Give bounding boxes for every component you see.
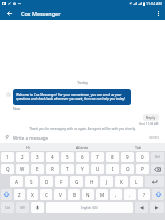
button[interactable]: Hi — [0, 143, 55, 151]
staticText: Welcome to Cox Messenger! For your conve… — [16, 93, 128, 101]
staticText: , — [115, 192, 117, 198]
button[interactable]: D — [40, 176, 53, 187]
button[interactable]: , — [110, 189, 122, 200]
button[interactable]: ▶ — [150, 202, 164, 213]
button[interactable]: !#© — [16, 202, 29, 213]
staticText: 3 — [36, 154, 39, 160]
staticText: 11:04 AM — [146, 1, 162, 6]
button[interactable]: English (US) — [46, 202, 133, 213]
button[interactable]: Atlanta — [55, 143, 110, 151]
staticText: Q — [6, 166, 10, 172]
button[interactable]: V — [54, 189, 66, 200]
button[interactable]: Attach file — [3, 133, 12, 142]
staticText: Cox Messenger — [21, 10, 61, 17]
button[interactable]: O — [121, 164, 134, 174]
staticText: G — [75, 179, 79, 185]
staticText: S — [30, 179, 33, 185]
button[interactable]: Q — [1, 164, 14, 174]
button[interactable]: Voice input — [31, 202, 44, 213]
button[interactable]: I — [106, 164, 119, 174]
button[interactable]: . — [124, 189, 136, 200]
button[interactable]: K — [115, 176, 128, 187]
button[interactable]: Del — [151, 152, 164, 162]
button[interactable]: SEND — [146, 133, 162, 142]
staticText: Sent 11:04 AM — [139, 122, 159, 126]
button[interactable]: Shift — [152, 189, 164, 200]
staticText: Write a message — [13, 135, 49, 141]
button[interactable]: Z — [14, 189, 25, 200]
staticText: 1 — [6, 154, 9, 160]
button[interactable]: More options — [151, 7, 165, 20]
staticText: H — [90, 179, 94, 185]
button[interactable]: 2 — [16, 152, 29, 162]
staticText: N — [86, 192, 90, 198]
button[interactable]: L — [130, 176, 143, 187]
staticText: A — [15, 179, 18, 185]
staticText: English (US) — [81, 206, 98, 210]
staticText: F — [60, 179, 63, 185]
button[interactable]: Shift — [1, 189, 12, 200]
button[interactable]: 6 — [76, 152, 89, 162]
button[interactable]: 1 — [1, 152, 14, 162]
staticText: Now — [13, 106, 21, 111]
button[interactable]: Reply — [143, 114, 159, 121]
button[interactable]: A — [10, 176, 23, 187]
button[interactable]: 9 — [121, 152, 134, 162]
staticText: ▶ — [155, 205, 159, 210]
button[interactable]: 5 — [61, 152, 74, 162]
button[interactable]: N — [82, 189, 94, 200]
button[interactable]: 7 — [91, 152, 104, 162]
staticText: O — [126, 166, 130, 172]
button[interactable]: B — [68, 189, 80, 200]
staticText: 6 — [81, 154, 84, 160]
button[interactable]: 0 — [136, 152, 149, 162]
button[interactable]: Ctrl — [1, 202, 14, 213]
button[interactable]: Back — [0, 7, 19, 20]
staticText: 0 — [141, 154, 144, 160]
staticText: Hi — [26, 145, 30, 150]
button[interactable]: ◀ — [135, 202, 148, 213]
button[interactable]: G — [70, 176, 83, 187]
button[interactable]: F — [55, 176, 68, 187]
button[interactable]: Backspace — [151, 164, 164, 174]
button[interactable]: P — [136, 164, 149, 174]
staticText: M — [100, 192, 105, 198]
staticText: L — [135, 179, 138, 185]
button[interactable]: W — [16, 164, 29, 174]
staticText: X — [31, 192, 34, 198]
staticText: D — [45, 179, 49, 185]
button[interactable]: 8 — [106, 152, 119, 162]
button[interactable]: C — [40, 189, 52, 200]
staticText: 7 — [96, 154, 99, 160]
staticText: Ctrl — [5, 206, 10, 210]
staticText: Tab — [135, 145, 141, 150]
button[interactable]: Y — [76, 164, 89, 174]
staticText: ? — [143, 192, 145, 198]
staticText: W — [20, 166, 25, 172]
staticText: 8 — [111, 154, 114, 160]
button[interactable]: T — [61, 164, 74, 174]
staticText: Today — [0, 80, 165, 85]
button[interactable]: Enter — [145, 176, 164, 187]
staticText: 2 — [21, 154, 24, 160]
staticText: J — [106, 179, 108, 185]
staticText: . — [129, 192, 131, 198]
button[interactable]: ? — [138, 189, 150, 200]
staticText: 4 — [51, 154, 54, 160]
button[interactable]: M — [96, 189, 108, 200]
staticText: Y — [81, 166, 84, 172]
button[interactable]: U — [91, 164, 104, 174]
button[interactable]: Tab — [110, 143, 165, 151]
staticText: 5 — [66, 154, 69, 160]
staticText: !#© — [20, 206, 26, 210]
button[interactable]: X — [27, 189, 38, 200]
button[interactable]: 4 — [46, 152, 59, 162]
staticText: Reply — [146, 115, 156, 120]
button[interactable]: R — [46, 164, 59, 174]
button[interactable]: S — [25, 176, 38, 187]
button[interactable]: H — [85, 176, 98, 187]
button[interactable]: 3 — [31, 152, 44, 162]
button[interactable]: J — [100, 176, 113, 187]
button[interactable]: E — [31, 164, 44, 174]
staticText: V — [59, 192, 62, 198]
